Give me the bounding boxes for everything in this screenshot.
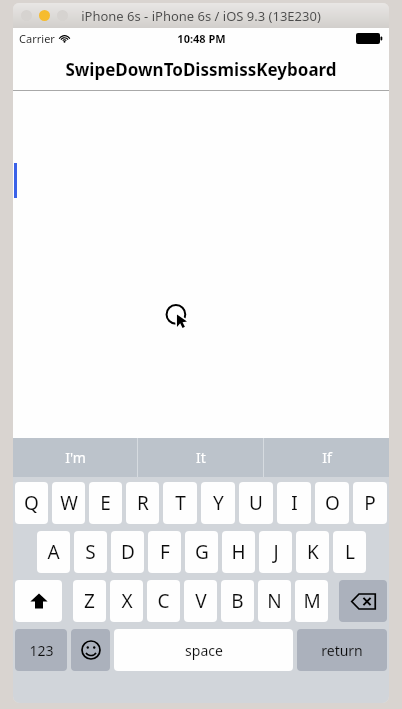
- staticText: SwipeDownToDissmissKeyboard: [65, 58, 337, 81]
- button[interactable]: R: [126, 482, 159, 524]
- staticText: F: [160, 539, 170, 565]
- button[interactable]: C: [147, 580, 180, 622]
- staticText: return: [321, 641, 363, 660]
- button[interactable]: I: [277, 482, 311, 524]
- staticText: S: [85, 539, 96, 565]
- button[interactable]: H: [222, 531, 255, 573]
- button[interactable]: Y: [201, 482, 235, 524]
- staticText: M: [303, 588, 321, 614]
- staticText: I'm: [65, 448, 86, 467]
- button[interactable]: If: [264, 438, 389, 477]
- button[interactable]: P: [353, 482, 387, 524]
- staticText: P: [364, 490, 376, 516]
- staticText: J: [273, 539, 279, 565]
- staticText: T: [175, 490, 186, 516]
- staticText: iPhone 6s - iPhone 6s / iOS 9.3 (13E230): [81, 7, 321, 25]
- staticText: C: [157, 588, 170, 614]
- button[interactable]: B: [221, 580, 254, 622]
- button[interactable]: L: [333, 531, 366, 573]
- button[interactable]: It: [138, 438, 263, 477]
- button[interactable]: space: [114, 629, 293, 671]
- staticText: Q: [24, 490, 39, 516]
- button[interactable]: Minimize: [39, 10, 50, 21]
- staticText: O: [325, 490, 340, 516]
- button[interactable]: A: [37, 531, 70, 573]
- staticText: D: [121, 539, 135, 565]
- button[interactable]: Emoji: [71, 629, 110, 671]
- button[interactable]: N: [258, 580, 291, 622]
- button[interactable]: return: [297, 629, 387, 671]
- button[interactable]: I'm: [13, 438, 137, 477]
- button[interactable]: 123: [15, 629, 67, 671]
- staticText: Y: [213, 490, 224, 516]
- button[interactable]: E: [89, 482, 122, 524]
- staticText: space: [185, 641, 223, 660]
- button[interactable]: D: [111, 531, 144, 573]
- button[interactable]: K: [296, 531, 329, 573]
- button[interactable]: M: [295, 580, 328, 622]
- button[interactable]: F: [148, 531, 181, 573]
- staticText: A: [47, 539, 60, 565]
- staticText: U: [249, 490, 263, 516]
- button[interactable]: W: [52, 482, 85, 524]
- button[interactable]: U: [239, 482, 273, 524]
- button[interactable]: Zoom: [57, 10, 68, 21]
- button[interactable]: V: [184, 580, 217, 622]
- staticText: E: [100, 490, 111, 516]
- button[interactable]: Shift: [15, 580, 62, 622]
- staticText: L: [345, 539, 355, 565]
- button[interactable]: G: [185, 531, 218, 573]
- staticText: H: [231, 539, 246, 565]
- button[interactable]: S: [74, 531, 107, 573]
- staticText: It: [196, 448, 206, 467]
- staticText: N: [267, 588, 282, 614]
- button[interactable]: Backspace: [339, 580, 387, 622]
- staticText: B: [231, 588, 244, 614]
- staticText: G: [195, 539, 209, 565]
- staticText: If: [322, 448, 332, 467]
- staticText: 10:48 PM: [177, 31, 226, 46]
- staticText: W: [60, 490, 78, 516]
- staticText: Carrier: [19, 31, 55, 46]
- staticText: Z: [84, 588, 95, 614]
- button[interactable]: T: [163, 482, 197, 524]
- staticText: I: [291, 490, 298, 516]
- button[interactable]: Close: [21, 10, 32, 21]
- staticText: K: [307, 539, 319, 565]
- staticText: R: [137, 490, 149, 516]
- staticText: X: [121, 588, 133, 614]
- button[interactable]: X: [110, 580, 143, 622]
- button[interactable]: Z: [73, 580, 106, 622]
- button[interactable]: J: [259, 531, 292, 573]
- staticText: 123: [29, 641, 54, 660]
- button[interactable]: O: [315, 482, 349, 524]
- staticText: V: [195, 588, 207, 614]
- button[interactable]: Q: [15, 482, 48, 524]
